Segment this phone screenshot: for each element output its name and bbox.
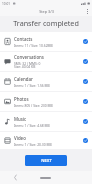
button[interactable]: Video [0, 132, 92, 149]
button[interactable]: Photos [0, 92, 92, 111]
button[interactable]: More options [83, 7, 92, 16]
staticText: Items: 805 / Size: 230 MB [14, 103, 53, 107]
staticText: Music [14, 116, 27, 122]
staticText: Conversations [14, 54, 44, 60]
staticText: Items: 1 / Size: 20.30 MB [14, 142, 52, 146]
staticText: Step 3/3 [39, 9, 54, 14]
staticText: Photos [14, 96, 29, 102]
staticText: 10:01 [2, 2, 11, 6]
button[interactable]: Music [0, 112, 92, 131]
staticText: Calendar [14, 76, 33, 82]
staticText: NEXT [41, 158, 52, 164]
staticText: Transfer completed [0, 18, 92, 28]
button[interactable]: Conversations [0, 52, 92, 71]
staticText: Items: 1 / Size: 1.56 MB [14, 83, 50, 87]
button[interactable]: Contacts [0, 32, 92, 51]
staticText: Items: 1 / Size: 4.68 MB [14, 123, 50, 127]
staticText: SMS: 32 / MMS: 0 Size: 40.04 KB [14, 61, 41, 69]
staticText: Contacts [14, 36, 33, 42]
button[interactable]: NEXT [25, 155, 67, 166]
button[interactable]: Home [30, 171, 61, 184]
staticText: Items: 11 / Size: 10.62MB [14, 43, 53, 47]
staticText: Video [14, 135, 26, 141]
button[interactable]: Back [0, 171, 30, 184]
button[interactable]: Calendar [0, 72, 92, 91]
